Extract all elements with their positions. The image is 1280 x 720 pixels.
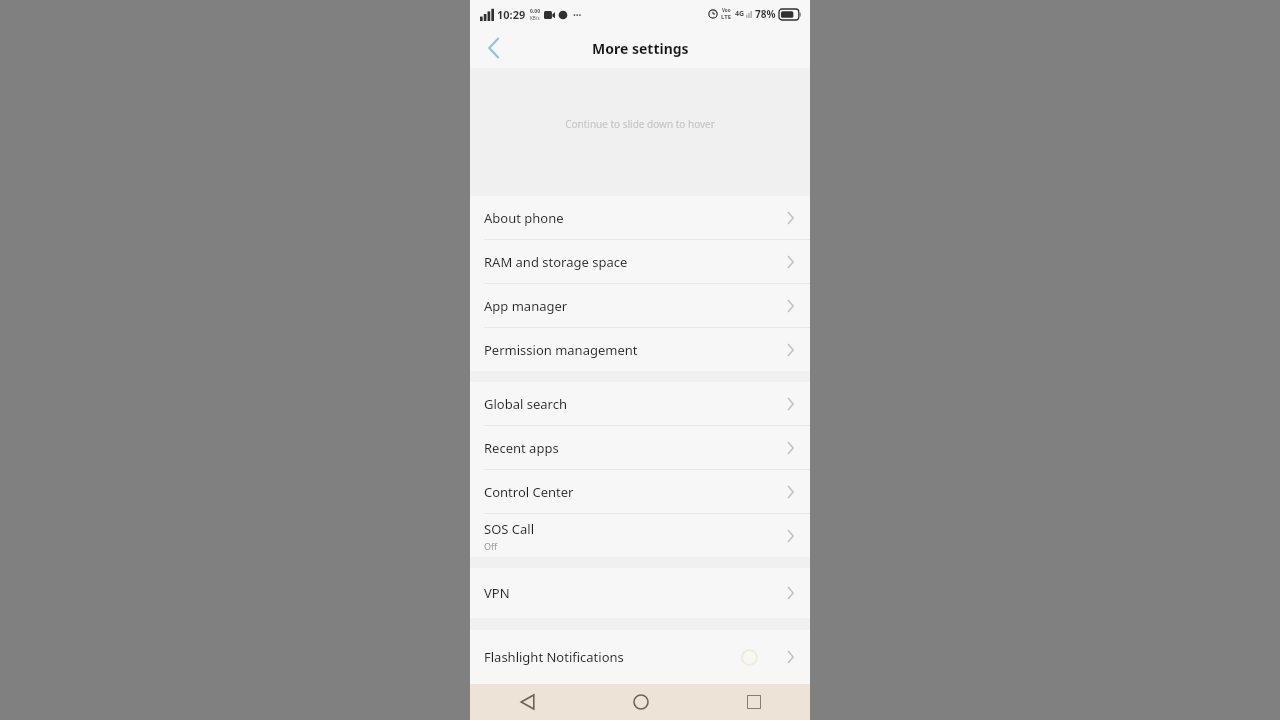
staticText: 0.00	[530, 8, 540, 15]
button[interactable]: Permission management	[470, 327, 810, 371]
staticText: Continue to slide down to hover	[565, 117, 715, 131]
staticText: Recent apps	[484, 439, 559, 457]
staticText: Off	[484, 540, 498, 552]
staticText: 4G	[735, 9, 745, 19]
staticText: App manager	[484, 297, 568, 315]
staticText: Control Center	[484, 483, 574, 501]
button[interactable]: Control Center	[470, 469, 810, 513]
staticText: LTE	[721, 13, 732, 21]
button[interactable]: Recent apps	[470, 425, 810, 469]
staticText: SOS Call	[484, 520, 535, 538]
button[interactable]: VPN	[470, 568, 810, 618]
button[interactable]: Back	[476, 30, 512, 66]
staticText: Voo	[722, 7, 731, 13]
button[interactable]: App manager	[470, 283, 810, 327]
staticText: About phone	[484, 209, 564, 227]
button[interactable]: Recent apps	[697, 684, 810, 720]
staticText: Global search	[484, 395, 567, 413]
staticText: VPN	[484, 584, 510, 602]
button[interactable]: SOS Call	[470, 513, 810, 557]
button[interactable]: Flashlight Notifications	[470, 630, 810, 684]
staticText: KB/s	[530, 15, 540, 21]
button[interactable]: About phone	[470, 196, 810, 239]
staticText: More settings	[592, 39, 689, 58]
button[interactable]: Back	[470, 684, 584, 720]
button[interactable]: RAM and storage space	[470, 239, 810, 283]
staticText: 10:29	[497, 7, 526, 22]
button[interactable]: Global search	[470, 382, 810, 425]
button[interactable]: Home	[584, 684, 697, 720]
staticText: Flashlight Notifications	[484, 648, 624, 666]
staticText: ···	[573, 8, 582, 22]
staticText: RAM and storage space	[484, 253, 628, 271]
staticText: Permission management	[484, 341, 638, 359]
staticText: 78%	[755, 7, 776, 21]
